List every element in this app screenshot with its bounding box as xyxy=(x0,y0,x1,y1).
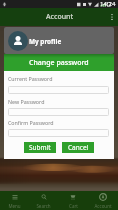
staticText: Change password xyxy=(29,58,89,68)
staticText: Submit xyxy=(29,143,51,152)
button[interactable] xyxy=(8,108,109,116)
staticText: New Password xyxy=(8,98,45,105)
staticText: Menu xyxy=(8,203,21,209)
staticText: Account xyxy=(94,203,112,209)
staticText: My profile xyxy=(29,37,62,46)
button[interactable]: Cancel xyxy=(62,142,94,153)
button[interactable]: Cart xyxy=(58,191,88,210)
button[interactable]: Account xyxy=(88,191,118,210)
button[interactable]: More options xyxy=(106,8,118,26)
button[interactable]: Change password xyxy=(4,54,114,71)
staticText: Cancel xyxy=(68,143,89,152)
button[interactable] xyxy=(8,129,109,137)
button[interactable]: My profile xyxy=(4,27,114,54)
button[interactable]: Submit xyxy=(24,142,56,153)
button[interactable]: Menu xyxy=(0,191,29,210)
staticText: 14:24 xyxy=(100,0,116,8)
staticText: Confirm Password xyxy=(8,119,54,126)
button[interactable]: Search xyxy=(29,191,58,210)
staticText: Search xyxy=(36,203,51,209)
staticText: Account xyxy=(46,12,74,22)
staticText: Cart xyxy=(69,203,78,209)
button[interactable] xyxy=(8,86,109,94)
staticText: Current Password xyxy=(8,75,53,82)
